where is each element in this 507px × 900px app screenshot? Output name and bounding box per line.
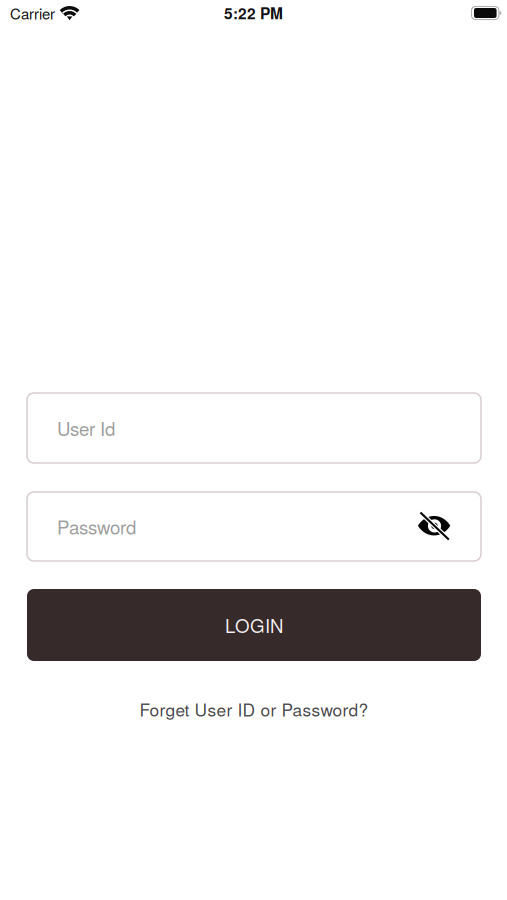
staticText: User Id <box>57 415 115 441</box>
staticText: Carrier <box>10 2 55 24</box>
staticText: Password <box>57 513 136 540</box>
button[interactable]: Show password <box>417 512 451 540</box>
staticText: Forget User ID or Password? <box>139 697 368 721</box>
button[interactable]: LOGIN <box>27 589 481 661</box>
button[interactable]: Password <box>27 492 481 561</box>
staticText: 5:22 PM <box>224 2 283 24</box>
button[interactable]: Forget User ID or Password? <box>27 699 481 719</box>
button[interactable]: User Id <box>27 393 481 463</box>
staticText: LOGIN <box>225 612 283 638</box>
